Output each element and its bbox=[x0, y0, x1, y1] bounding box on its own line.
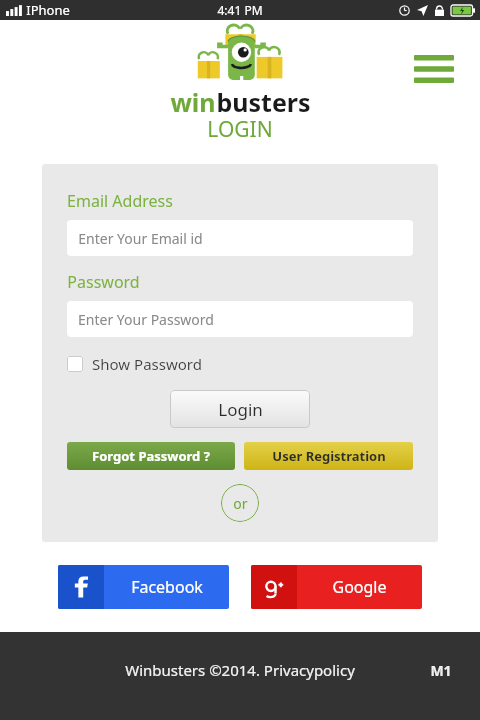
staticText: busters bbox=[216, 85, 311, 115]
staticText: M1 bbox=[430, 661, 452, 680]
button[interactable]: Facebook bbox=[58, 565, 229, 609]
staticText: Winbusters ©2014. Privacypolicy bbox=[125, 660, 355, 680]
button[interactable]: Enter Your Password bbox=[67, 301, 413, 337]
button[interactable]: Login bbox=[170, 390, 310, 428]
staticText: Email Address bbox=[67, 190, 173, 212]
staticText: 4:41 PM bbox=[217, 2, 263, 18]
button[interactable]: Enter Your Email id bbox=[67, 220, 413, 256]
staticText: Google bbox=[332, 576, 387, 598]
staticText: Facebook bbox=[131, 576, 203, 598]
staticText: Enter Your Password bbox=[78, 310, 214, 329]
staticText: IPhone bbox=[26, 1, 70, 19]
staticText: User Registration bbox=[272, 447, 386, 465]
button[interactable]: Menu bbox=[414, 52, 454, 82]
button[interactable]: or bbox=[221, 484, 259, 522]
button[interactable]: Show Password bbox=[67, 352, 202, 376]
staticText: Password bbox=[67, 271, 140, 293]
button[interactable]: Forgot Password ? bbox=[67, 442, 235, 470]
staticText: win bbox=[170, 85, 216, 115]
staticText: LOGIN bbox=[207, 115, 273, 144]
staticText: Enter Your Email id bbox=[78, 229, 203, 248]
button[interactable]: User Registration bbox=[244, 442, 413, 470]
staticText: Show Password bbox=[92, 354, 202, 374]
button[interactable]: Google bbox=[251, 565, 422, 609]
staticText: Forgot Password ? bbox=[92, 447, 210, 465]
staticText: Login bbox=[218, 398, 263, 421]
staticText: or bbox=[233, 494, 248, 513]
